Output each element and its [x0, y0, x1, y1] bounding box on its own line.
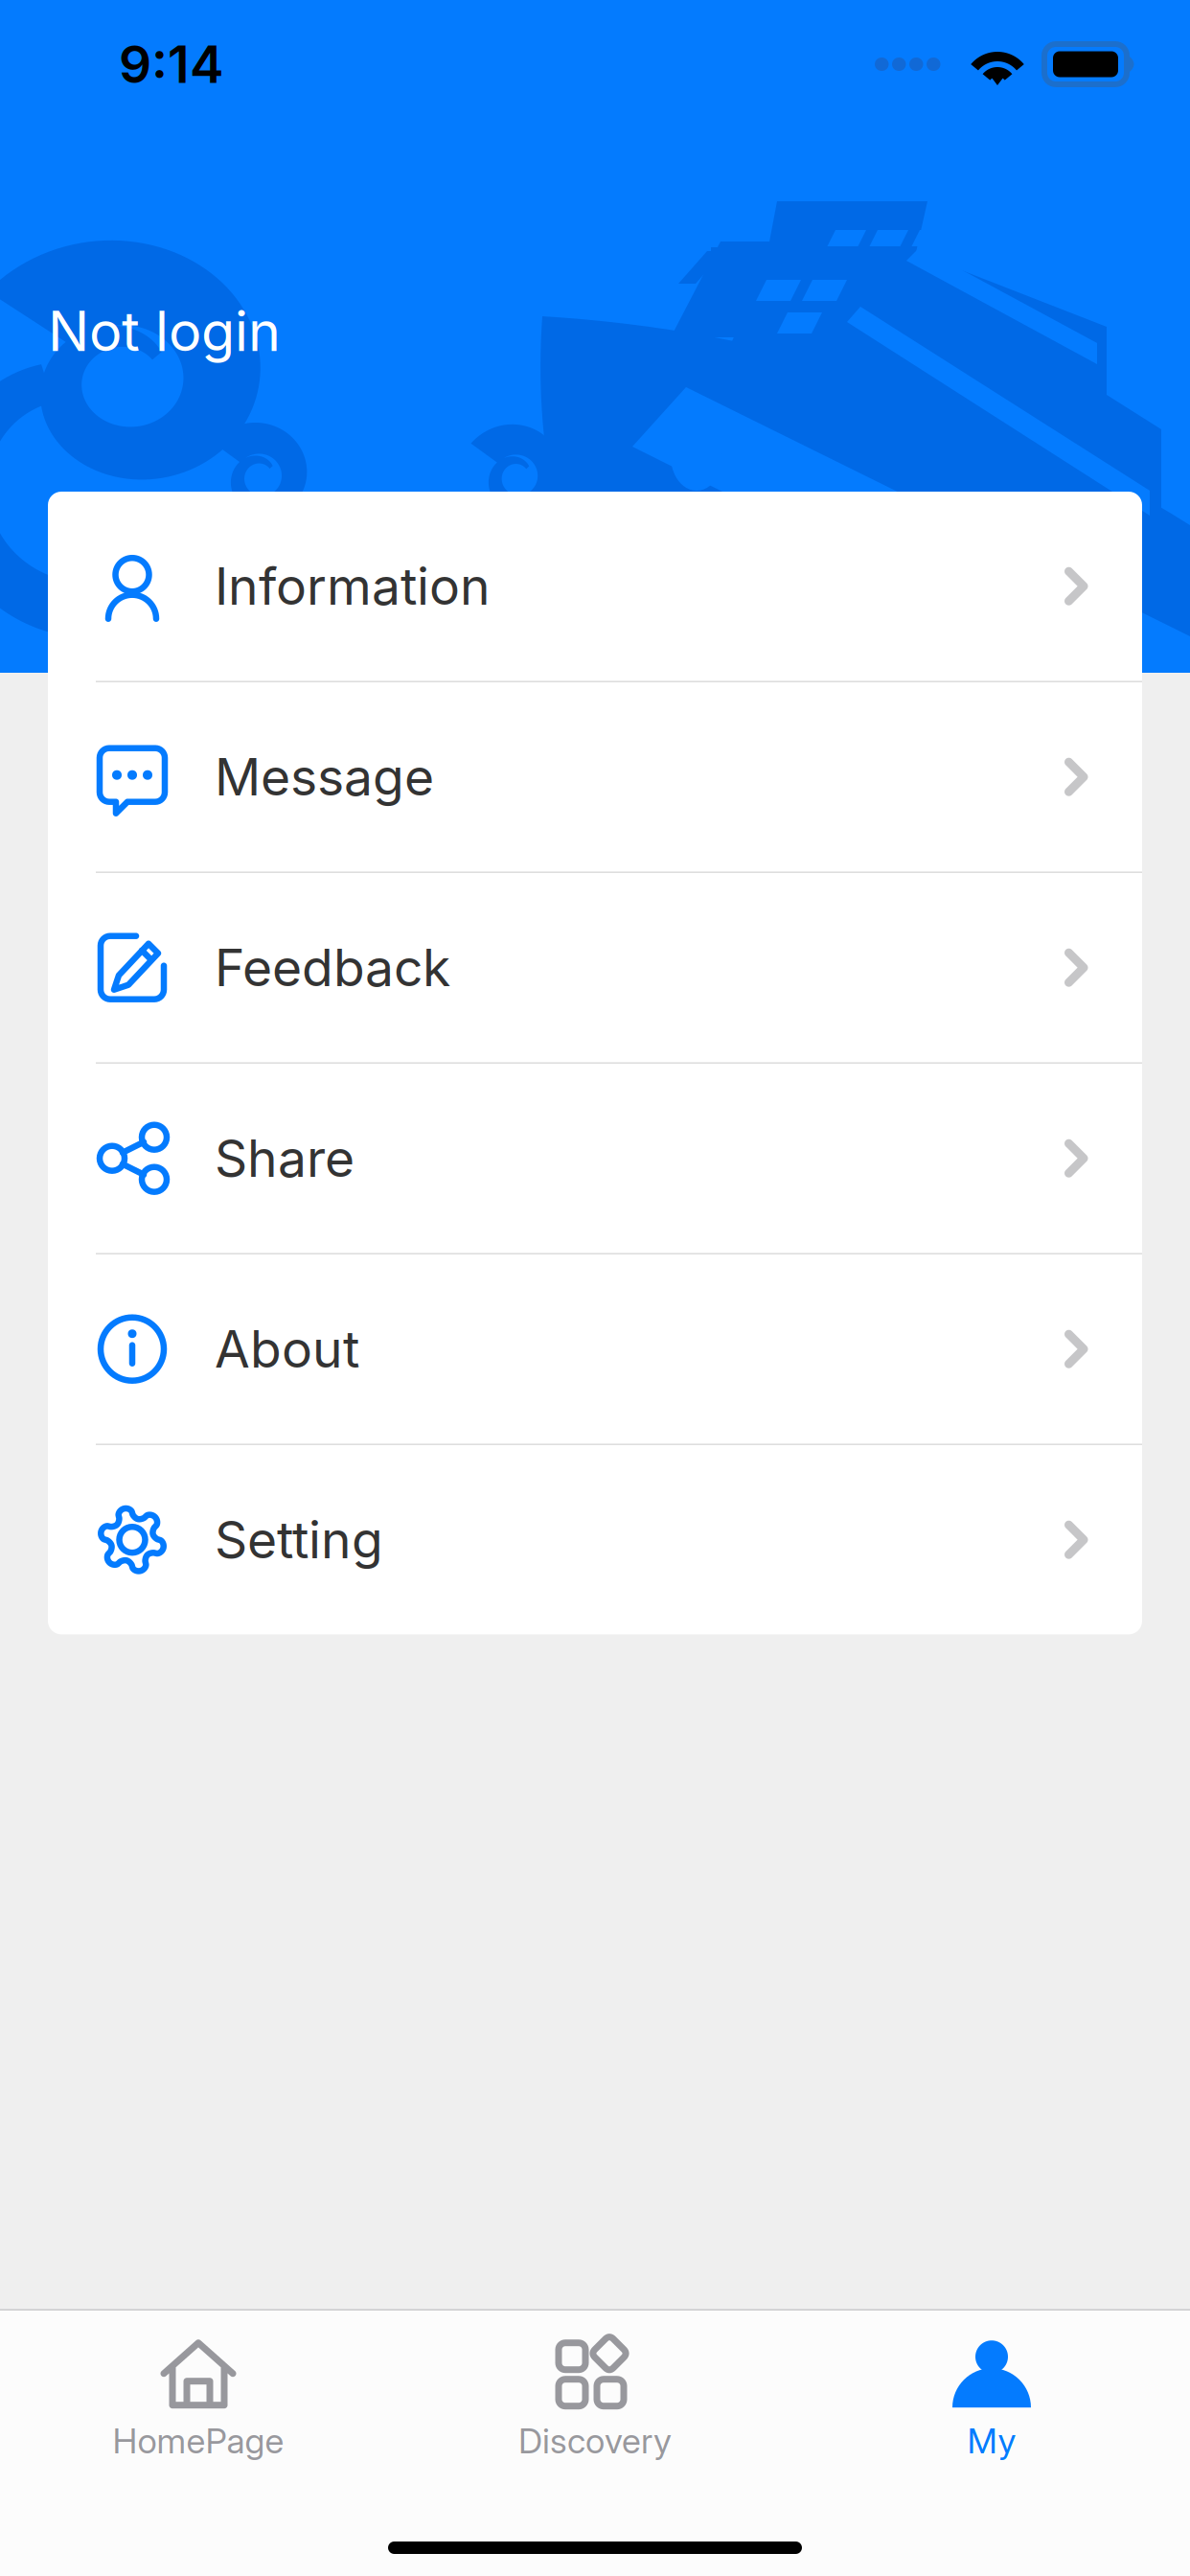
- staticText: HomePage: [113, 2420, 284, 2462]
- button[interactable]: Share: [48, 1064, 1142, 1253]
- staticText: Message: [215, 746, 434, 808]
- button[interactable]: About: [48, 1254, 1142, 1444]
- staticText: About: [215, 1318, 359, 1380]
- staticText: Setting: [215, 1509, 383, 1571]
- staticText: Not login: [48, 298, 281, 364]
- staticText: Feedback: [215, 937, 450, 998]
- staticText: Information: [215, 555, 491, 617]
- button[interactable]: HomePage: [0, 2311, 397, 2469]
- staticText: 9:14: [119, 33, 224, 95]
- staticText: Discovery: [518, 2420, 672, 2462]
- staticText: My: [967, 2420, 1016, 2462]
- button[interactable]: Message: [48, 682, 1142, 872]
- button[interactable]: Discovery: [397, 2311, 793, 2469]
- button[interactable]: Feedback: [48, 873, 1142, 1062]
- staticText: Share: [215, 1127, 355, 1189]
- button[interactable]: Information: [48, 492, 1142, 681]
- button[interactable]: My: [793, 2311, 1190, 2469]
- button[interactable]: Setting: [48, 1445, 1142, 1634]
